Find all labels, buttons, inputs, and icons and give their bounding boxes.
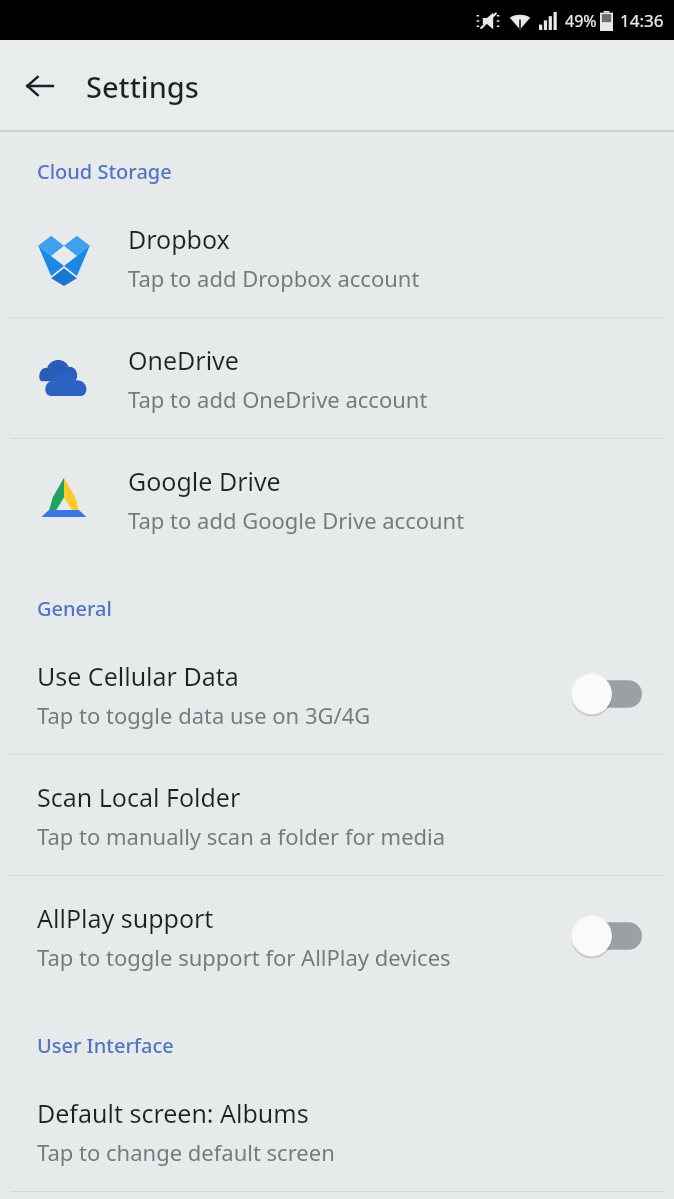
- staticText: Settings: [86, 67, 199, 106]
- button[interactable]: Default screen: Albums: [0, 1071, 674, 1191]
- button[interactable]: Use Cellular Data: [0, 634, 674, 754]
- staticText: Tap to add Dropbox account: [128, 263, 420, 293]
- staticText: General: [37, 595, 112, 622]
- staticText: Default screen: Albums: [37, 1096, 309, 1130]
- staticText: Tap to toggle support for AllPlay device…: [37, 942, 451, 972]
- staticText: Tap to manually scan a folder for media: [37, 821, 446, 851]
- staticText: 49%: [565, 10, 597, 32]
- staticText: Scan Local Folder: [37, 780, 241, 814]
- staticText: Tap to add Google Drive account: [128, 505, 465, 535]
- button[interactable]: Scan Local Folder: [0, 755, 674, 875]
- staticText: Tap to change default screen: [37, 1137, 335, 1167]
- button[interactable]: Back: [12, 58, 68, 114]
- staticText: User Interface: [37, 1032, 174, 1059]
- button[interactable]: AllPlay support toggle: [566, 910, 646, 962]
- staticText: Use Cellular Data: [37, 659, 239, 693]
- staticText: 14:36: [620, 9, 664, 32]
- staticText: Dropbox: [128, 222, 230, 256]
- staticText: Tap to toggle data use on 3G/4G: [37, 700, 371, 730]
- staticText: AllPlay support: [37, 901, 214, 935]
- button[interactable]: Google Drive: [0, 439, 674, 559]
- staticText: Tap to add OneDrive account: [128, 384, 428, 414]
- staticText: Google Drive: [128, 464, 281, 498]
- button[interactable]: AllPlay support: [0, 876, 674, 996]
- button[interactable]: Use Cellular Data toggle: [566, 668, 646, 720]
- staticText: OneDrive: [128, 343, 239, 377]
- button[interactable]: OneDrive: [0, 318, 674, 438]
- button[interactable]: Dropbox: [0, 197, 674, 317]
- staticText: Cloud Storage: [37, 158, 172, 185]
